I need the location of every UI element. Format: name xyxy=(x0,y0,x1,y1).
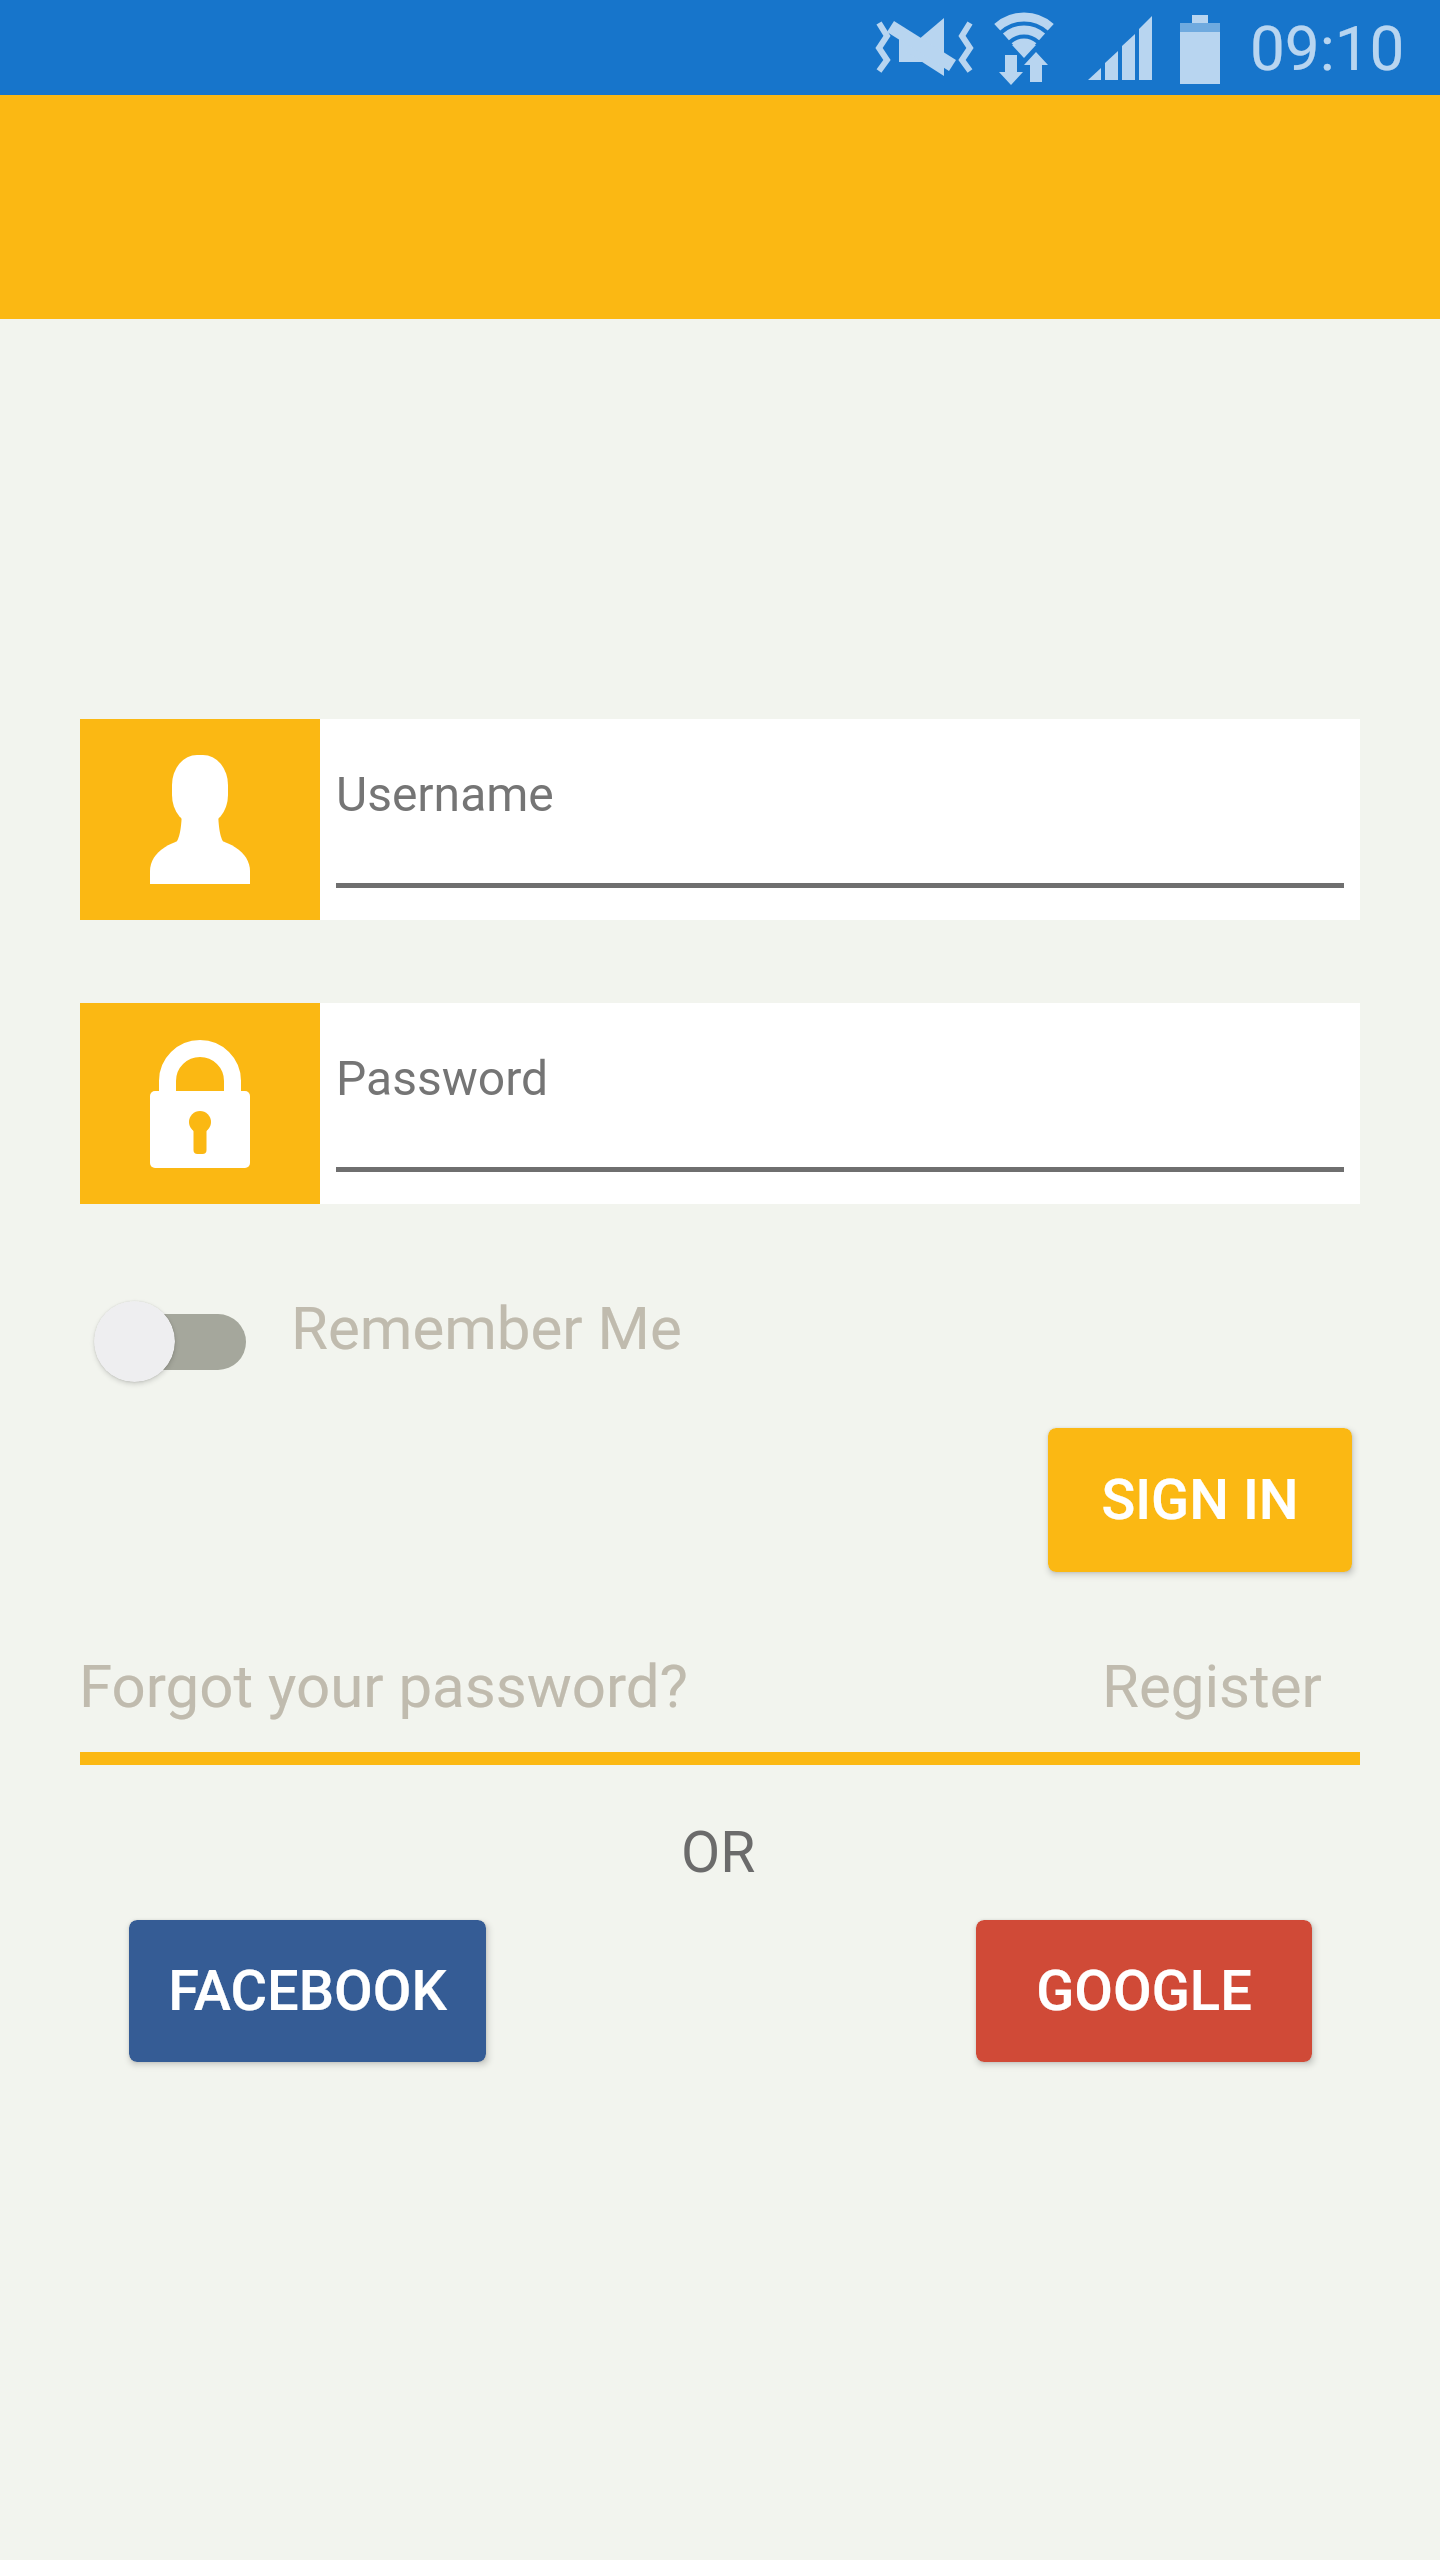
staticText: SIGN IN xyxy=(1101,1467,1299,1533)
other: Password xyxy=(80,1003,320,1204)
button[interactable]: FACEBOOK xyxy=(129,1920,486,2062)
button[interactable]: SIGN IN xyxy=(1048,1428,1352,1572)
button[interactable]: Remember Me xyxy=(94,1296,686,1388)
staticText: Remember Me xyxy=(291,1293,682,1363)
staticText: Username xyxy=(336,766,554,822)
button[interactable]: Account xyxy=(80,719,1360,920)
staticText: FACEBOOK xyxy=(168,1958,447,2024)
staticText: GOOGLE xyxy=(1036,1958,1252,2024)
staticText: 09:10 xyxy=(1250,12,1405,85)
button[interactable]: Password xyxy=(80,1003,1360,1204)
button[interactable]: Register xyxy=(1102,1651,1322,1721)
other: Account xyxy=(80,719,320,920)
button[interactable]: GOOGLE xyxy=(976,1920,1312,2062)
staticText: OR xyxy=(681,1819,756,1886)
button[interactable]: Forgot your password? xyxy=(79,1651,688,1721)
staticText: Password xyxy=(336,1050,549,1106)
